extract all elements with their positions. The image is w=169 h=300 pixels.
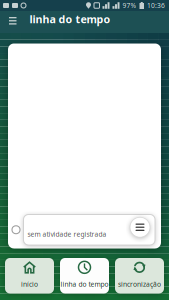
button[interactable]: linha do tempo [60,258,109,293]
staticText: sem atividade registrada [27,230,106,239]
button[interactable]: Opções [130,217,150,237]
staticText: sincronização [118,280,161,289]
button[interactable]: início [5,258,54,293]
staticText: linha do tempo [60,280,108,289]
button[interactable]: Menu [0,15,16,23]
staticText: linha do tempo [29,12,110,26]
staticText: início [21,280,38,289]
button[interactable]: sincronização [115,258,164,293]
staticText: 10:36 [147,1,165,10]
button[interactable]: Selecionar [12,226,20,234]
staticText: 97% [122,1,136,10]
